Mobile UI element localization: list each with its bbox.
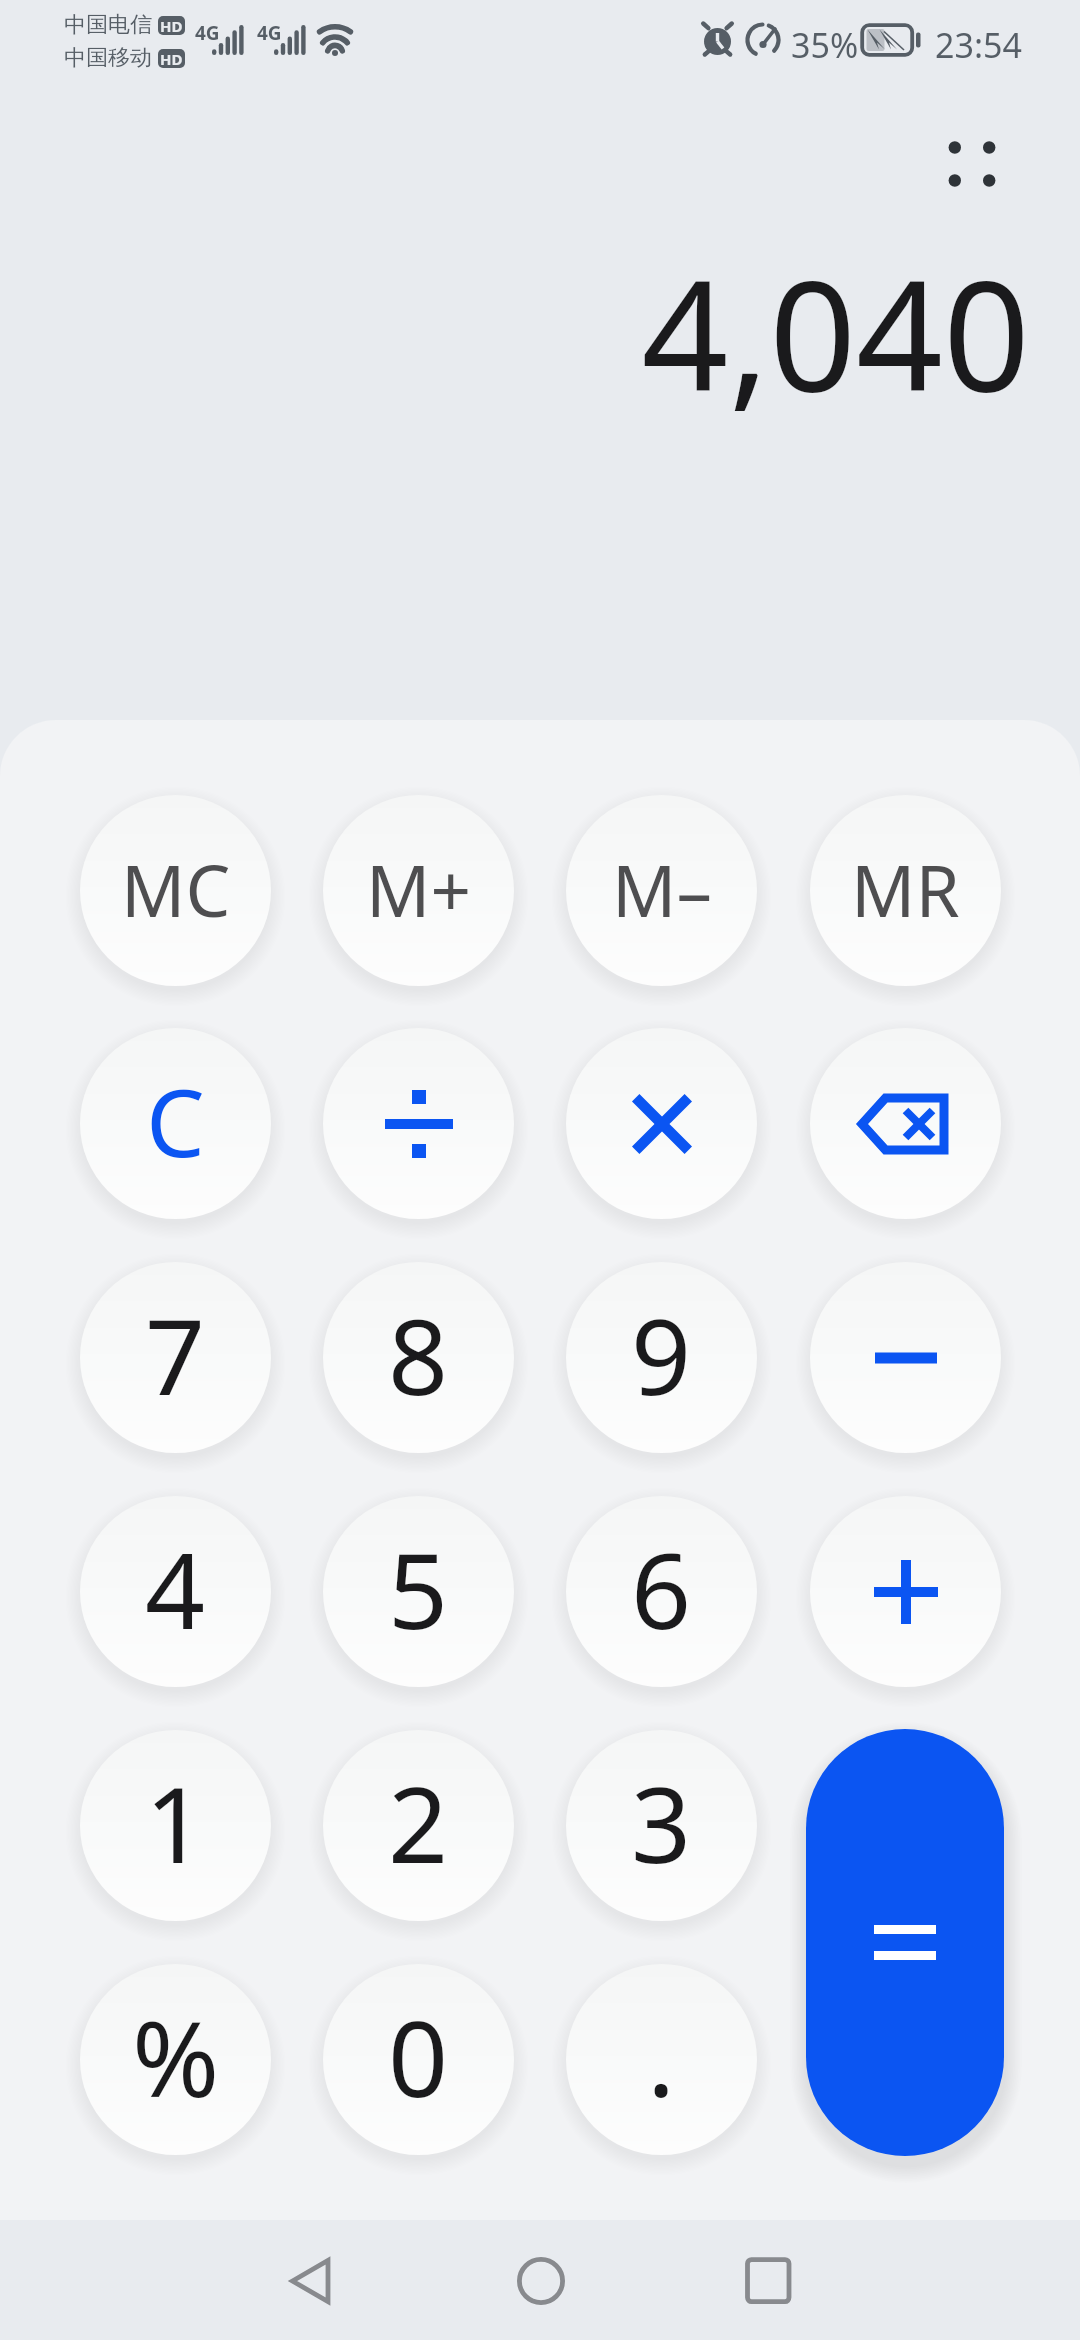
button[interactable]: MR [810, 795, 1001, 986]
button[interactable]: Back [261, 2231, 361, 2331]
button[interactable]: MC [80, 795, 271, 986]
staticText: 9 [631, 1283, 692, 1426]
staticText: 35% [791, 22, 859, 68]
button[interactable]: 2 [323, 1730, 514, 1921]
staticText: 4G [257, 20, 282, 46]
staticText: MC [121, 841, 231, 938]
staticText: % [132, 1985, 220, 2128]
staticText: 2 [388, 1751, 449, 1894]
button[interactable]: 4 [80, 1496, 271, 1687]
staticText: 4,040 [641, 229, 1030, 436]
staticText: 8 [388, 1283, 449, 1426]
button[interactable]: . [566, 1964, 757, 2155]
button[interactable]: Equals [806, 1729, 1004, 2156]
staticText: . [647, 1985, 676, 2128]
button[interactable]: Backspace [810, 1028, 1001, 1219]
button[interactable]: More options [917, 109, 1027, 219]
button[interactable]: % [80, 1964, 271, 2155]
button[interactable]: 5 [323, 1496, 514, 1687]
button[interactable]: Minus [810, 1262, 1001, 1453]
staticText: 4G [195, 20, 220, 46]
button[interactable]: 0 [323, 1964, 514, 2155]
staticText: 6 [631, 1517, 692, 1660]
button[interactable]: Recents [718, 2231, 818, 2331]
staticText: 中国电信 [64, 11, 152, 39]
button[interactable]: 3 [566, 1730, 757, 1921]
button[interactable]: Divide [323, 1028, 514, 1219]
button[interactable]: 7 [80, 1262, 271, 1453]
button[interactable]: Plus [810, 1496, 1001, 1687]
staticText: HD [160, 16, 183, 35]
staticText: 中国移动 [64, 44, 152, 72]
staticText: HD [160, 49, 183, 68]
button[interactable]: 8 [323, 1262, 514, 1453]
staticText: 5 [388, 1517, 449, 1660]
button[interactable]: Home [491, 2231, 591, 2331]
staticText: 0 [388, 1985, 449, 2128]
staticText: M+ [366, 841, 472, 938]
staticText: 4 [145, 1517, 206, 1660]
staticText: 1 [145, 1751, 206, 1894]
button[interactable]: M– [566, 795, 757, 986]
staticText: C [146, 1058, 205, 1185]
staticText: 23:54 [935, 22, 1022, 68]
button[interactable]: 6 [566, 1496, 757, 1687]
staticText: 3 [631, 1751, 692, 1894]
staticText: 7 [145, 1283, 206, 1426]
button[interactable]: 9 [566, 1262, 757, 1453]
button[interactable]: Multiply [566, 1028, 757, 1219]
button[interactable]: 1 [80, 1730, 271, 1921]
staticText: M– [612, 841, 712, 938]
staticText: MR [851, 841, 960, 938]
button[interactable]: C [80, 1028, 271, 1219]
button[interactable]: M+ [323, 795, 514, 986]
